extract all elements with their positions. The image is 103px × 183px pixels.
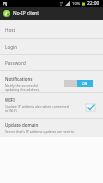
button[interactable]: Notifications toggle — [64, 80, 93, 87]
staticText: Host — [5, 27, 16, 33]
staticText: Login — [5, 44, 18, 50]
staticText: ON — [82, 81, 88, 86]
staticText: Notifications — [5, 76, 33, 82]
button[interactable]: Wi-Fi update checkbox — [86, 104, 95, 111]
staticText: Update IP address also when connected to… — [5, 104, 69, 113]
staticText: No-IP client — [13, 10, 40, 17]
staticText: Update domain — [5, 122, 39, 128]
staticText: 10% — [72, 1, 81, 7]
staticText: Password — [5, 60, 26, 66]
button[interactable]: Password — [0, 55, 103, 71]
staticText: Notify the successful updating the addre… — [5, 83, 40, 92]
staticText: 22:00 — [87, 0, 100, 7]
button[interactable]: Update domain — [0, 119, 103, 137]
button[interactable]: Notifications — [0, 71, 103, 93]
button[interactable]: No-IP client — [0, 7, 103, 20]
button[interactable]: Host — [0, 22, 103, 39]
button[interactable]: Login — [0, 39, 103, 55]
staticText: Server that's IP address updates are sen… — [5, 129, 76, 134]
staticText: WIFI — [5, 97, 15, 103]
button[interactable]: WIFI — [0, 93, 103, 119]
